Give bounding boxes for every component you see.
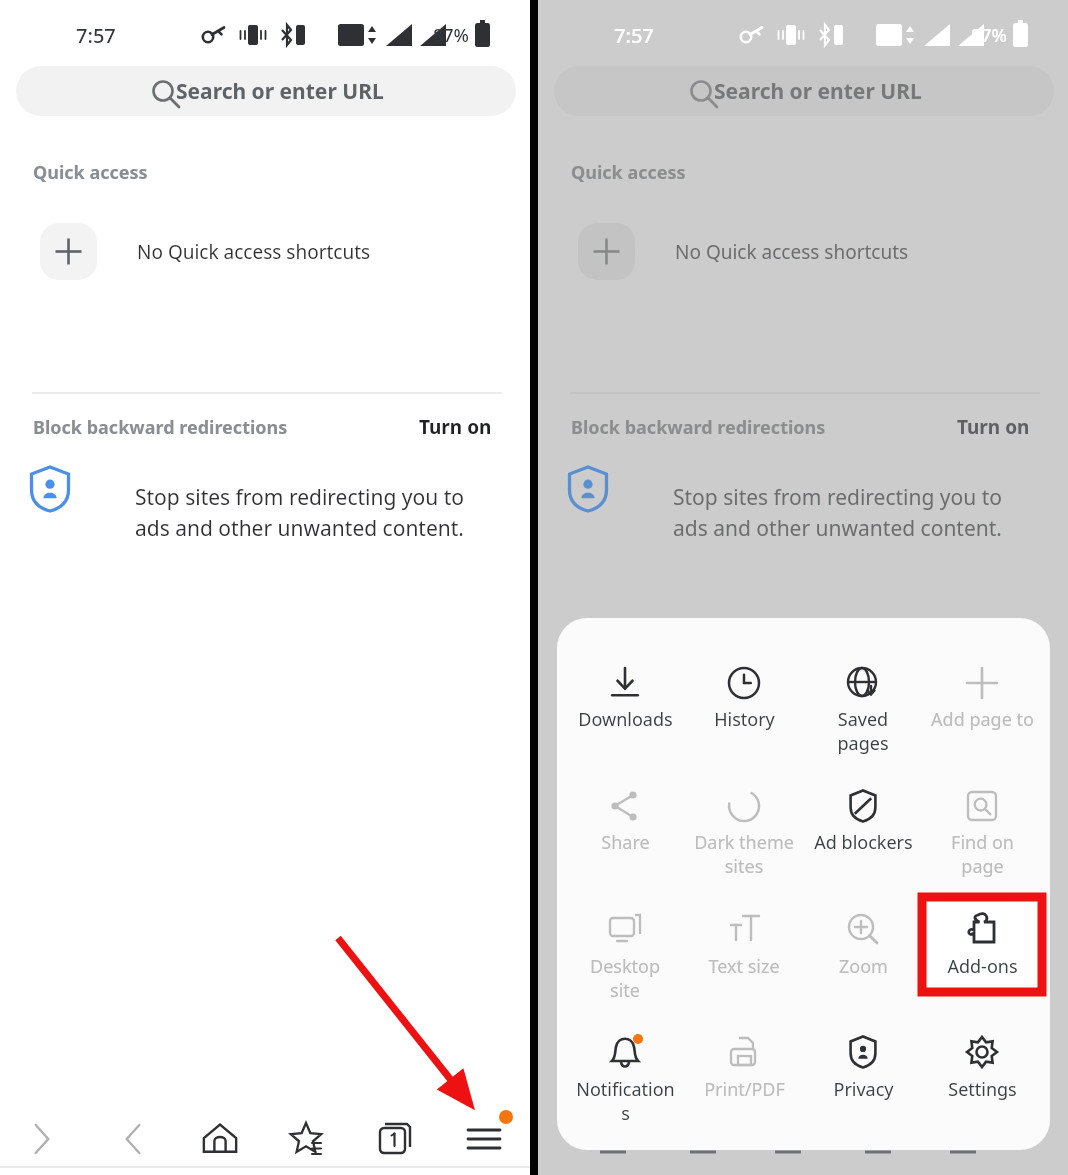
button[interactable]: Turn on bbox=[957, 414, 1030, 440]
staticText: Add page to bbox=[931, 707, 1034, 732]
button[interactable]: Settings bbox=[924, 1043, 1040, 1143]
button[interactable]: Search or enter URL bbox=[554, 66, 1054, 116]
button[interactable]: Saved pages bbox=[805, 673, 921, 773]
button[interactable]: Turn on bbox=[419, 414, 492, 440]
button[interactable]: Text size bbox=[686, 920, 802, 1020]
button[interactable]: Add page to bbox=[924, 673, 1040, 773]
staticText: Ad blockers bbox=[814, 830, 913, 855]
button[interactable]: Bookmarks bbox=[268, 1101, 344, 1167]
button[interactable]: Back bbox=[4, 1101, 80, 1167]
staticText: 87% bbox=[433, 23, 469, 48]
staticText: Block backward redirections bbox=[571, 415, 826, 440]
staticText: 87% bbox=[971, 23, 1007, 48]
staticText: Stop sites from redirecting you to ads a… bbox=[135, 483, 464, 542]
button[interactable]: Zoom bbox=[805, 920, 921, 1020]
button[interactable]: Find on page bbox=[924, 796, 1040, 896]
button[interactable]: Search or enter URL bbox=[16, 66, 516, 116]
button[interactable]: Notification s bbox=[567, 1043, 683, 1143]
button[interactable]: Tabs bbox=[358, 1101, 434, 1167]
staticText: Zoom bbox=[839, 954, 888, 979]
staticText: Quick access bbox=[33, 160, 148, 185]
staticText: Find on page bbox=[951, 830, 1014, 878]
staticText: Print/PDF bbox=[704, 1077, 785, 1102]
button[interactable]: Print/PDF bbox=[686, 1043, 802, 1143]
staticText: Settings bbox=[948, 1077, 1017, 1102]
button[interactable]: Share bbox=[567, 796, 683, 896]
staticText: 7:57 bbox=[614, 22, 654, 49]
staticText: Share bbox=[601, 830, 650, 855]
staticText: Saved pages bbox=[837, 707, 889, 755]
button[interactable]: Add-ons bbox=[924, 920, 1040, 1020]
button[interactable]: Home bbox=[182, 1101, 258, 1167]
button[interactable]: No Quick access shortcuts bbox=[578, 223, 978, 280]
staticText: Downloads bbox=[578, 707, 673, 732]
staticText: History bbox=[714, 707, 775, 732]
staticText: No Quick access shortcuts bbox=[675, 239, 909, 265]
staticText: Turn on bbox=[419, 414, 492, 440]
button[interactable]: History bbox=[686, 673, 802, 773]
staticText: Search or enter URL bbox=[176, 77, 384, 106]
button[interactable]: Downloads bbox=[567, 673, 683, 773]
staticText: Text size bbox=[708, 954, 780, 979]
staticText: Search or enter URL bbox=[714, 77, 922, 106]
button[interactable]: Desktop site bbox=[567, 920, 683, 1020]
staticText: Turn on bbox=[957, 414, 1030, 440]
staticText: Quick access bbox=[571, 160, 686, 185]
staticText: Stop sites from redirecting you to ads a… bbox=[673, 483, 1002, 542]
button[interactable]: No Quick access shortcuts bbox=[40, 223, 440, 280]
button[interactable]: Privacy bbox=[805, 1043, 921, 1143]
staticText: Block backward redirections bbox=[33, 415, 288, 440]
staticText: 7:57 bbox=[76, 22, 116, 49]
staticText: Notification s bbox=[576, 1077, 675, 1125]
staticText: Add-ons bbox=[947, 954, 1018, 979]
button[interactable]: Forward bbox=[95, 1101, 171, 1167]
staticText: No Quick access shortcuts bbox=[137, 239, 371, 265]
staticText: Privacy bbox=[833, 1077, 894, 1102]
button[interactable]: Ad blockers bbox=[805, 796, 921, 896]
staticText: Desktop site bbox=[590, 954, 660, 1002]
staticText: Dark theme sites bbox=[694, 830, 794, 878]
button[interactable]: Menu bbox=[446, 1101, 522, 1167]
button[interactable]: Dark theme sites bbox=[686, 796, 802, 896]
